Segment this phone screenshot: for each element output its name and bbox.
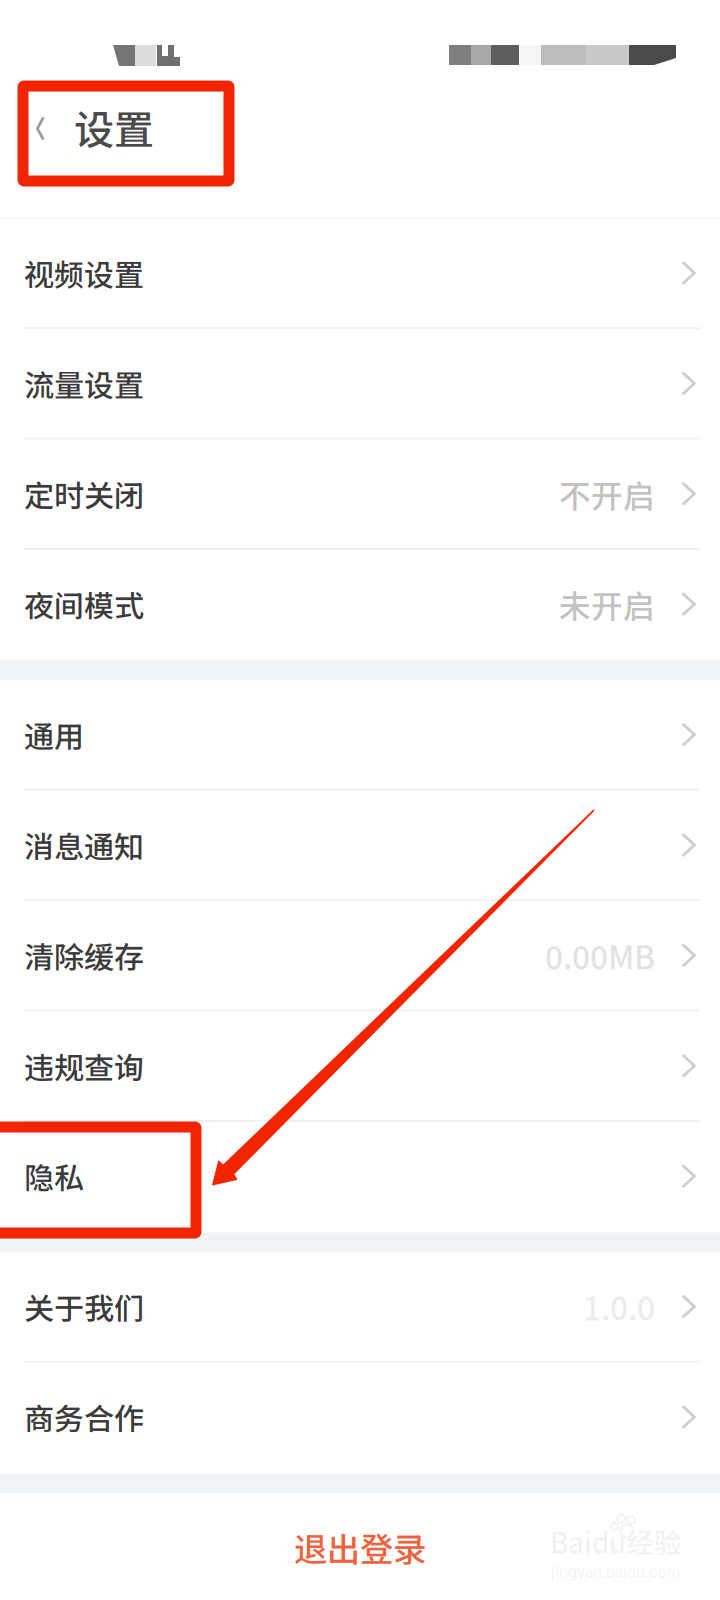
staticText: 设置 (74, 98, 154, 156)
button[interactable]: 夜间模式 (0, 550, 720, 660)
staticText: 0.00MB (545, 932, 655, 978)
button[interactable]: 商务合作 (0, 1363, 720, 1473)
staticText: 1.0.0 (583, 1284, 655, 1330)
button[interactable]: 通用 (0, 680, 720, 791)
staticText: 定时关闭 (24, 472, 144, 515)
button[interactable]: 关于我们 (0, 1252, 720, 1363)
staticText: Baidu经验 (550, 1521, 682, 1561)
button[interactable]: 定时关闭 (0, 440, 720, 550)
staticText: 隐私 (24, 1154, 84, 1198)
button[interactable]: 返回 (0, 94, 65, 163)
staticText: 流量设置 (24, 362, 144, 405)
button[interactable]: 设置 (74, 98, 154, 156)
staticText: jingyan.baidu.com (551, 1563, 680, 1581)
staticText: 违规查询 (24, 1044, 144, 1087)
staticText: 未开启 (559, 581, 655, 627)
staticText: 关于我们 (24, 1285, 144, 1328)
button[interactable]: 消息通知 (0, 791, 720, 901)
button[interactable]: 清除缓存 (0, 901, 720, 1012)
button[interactable]: 流量设置 (0, 329, 720, 440)
button[interactable]: 隐私 (0, 1122, 720, 1232)
staticText: 通用 (24, 713, 84, 756)
staticText: 退出登录 (294, 1523, 426, 1571)
staticText: 视频设置 (24, 251, 144, 295)
button[interactable]: 退出登录 (0, 1493, 720, 1600)
staticText: 清除缓存 (24, 934, 144, 977)
staticText: 消息通知 (24, 823, 144, 867)
staticText: 不开启 (559, 471, 655, 517)
button[interactable]: 视频设置 (0, 219, 720, 329)
staticText: 商务合作 (24, 1395, 144, 1439)
staticText: 夜间模式 (24, 582, 144, 626)
button[interactable]: 违规查询 (0, 1012, 720, 1122)
